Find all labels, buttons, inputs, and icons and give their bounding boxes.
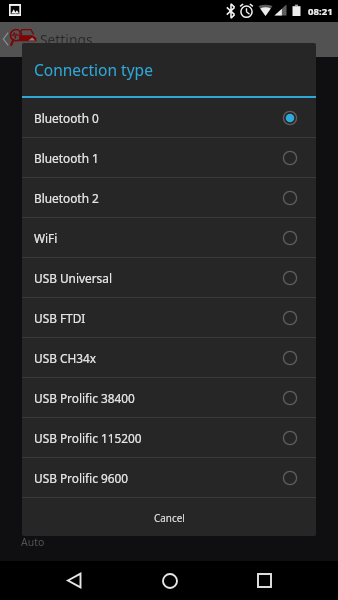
button[interactable]: Home <box>150 561 190 600</box>
staticText: Cancel <box>154 511 185 524</box>
button[interactable]: Recent apps <box>244 561 284 600</box>
staticText: USB Universal <box>34 270 280 286</box>
button[interactable]: WiFi <box>22 218 316 258</box>
staticText: USB Prolific 38400 <box>34 390 280 406</box>
staticText: Bluetooth 2 <box>34 190 280 206</box>
button[interactable]: USB Universal <box>22 258 316 298</box>
staticText: Auto <box>21 535 45 549</box>
button[interactable]: Bluetooth 0 <box>22 98 316 138</box>
button[interactable]: USB FTDI <box>22 298 316 338</box>
button[interactable]: USB Prolific 38400 <box>22 378 316 418</box>
button[interactable]: Bluetooth 2 <box>22 178 316 218</box>
staticText: Connection type <box>34 59 153 80</box>
button[interactable]: USB Prolific 115200 <box>22 418 316 458</box>
button[interactable]: USB Prolific 9600 <box>22 458 316 498</box>
staticText: USB FTDI <box>34 310 280 326</box>
staticText: Bluetooth 1 <box>34 150 280 166</box>
staticText: USB Prolific 115200 <box>34 430 280 446</box>
button[interactable]: USB CH34x <box>22 338 316 378</box>
button[interactable]: Back <box>54 561 94 600</box>
staticText: Settings <box>40 30 93 49</box>
staticText: USB CH34x <box>34 350 280 366</box>
staticText: USB Prolific 9600 <box>34 470 280 486</box>
staticText: WiFi <box>34 230 280 246</box>
staticText: Bluetooth 0 <box>34 110 280 126</box>
staticText: 08:21 <box>308 5 333 18</box>
button[interactable]: Cancel <box>22 498 316 536</box>
button[interactable]: Bluetooth 1 <box>22 138 316 178</box>
